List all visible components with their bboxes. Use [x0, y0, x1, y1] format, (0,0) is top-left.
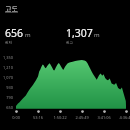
- button[interactable]: 고도: [5, 5, 18, 13]
- staticText: 656: [5, 26, 24, 40]
- staticText: 1,307: [66, 26, 93, 40]
- staticText: 1,070: [0, 75, 13, 80]
- staticText: 790: [0, 95, 13, 100]
- staticText: 650: [0, 105, 13, 110]
- staticText: 2:45:49: [72, 115, 92, 120]
- staticText: 최저: [5, 41, 13, 46]
- staticText: 1,350: [0, 55, 13, 60]
- staticText: 최고: [66, 41, 74, 46]
- staticText: m: [25, 31, 31, 39]
- staticText: 1,210: [0, 65, 13, 70]
- staticText: 930: [0, 85, 13, 90]
- staticText: 고도: [5, 5, 18, 13]
- staticText: 4:36:43: [116, 115, 130, 120]
- staticText: 1:50:22: [50, 115, 70, 120]
- staticText: 3:41:06: [94, 115, 114, 120]
- staticText: 53:16: [28, 115, 48, 120]
- staticText: m: [94, 31, 100, 39]
- staticText: 0:00: [6, 115, 26, 120]
